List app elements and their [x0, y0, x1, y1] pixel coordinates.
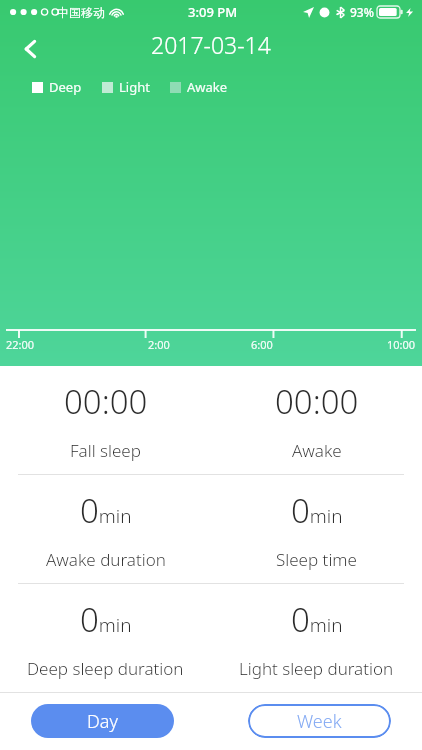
staticText: 10:00: [387, 337, 416, 352]
staticText: 0min: [80, 488, 132, 533]
button[interactable]: Day: [31, 704, 174, 738]
staticText: Fall sleep: [70, 439, 141, 462]
staticText: 22:00: [6, 337, 35, 352]
button[interactable]: Back: [10, 28, 52, 70]
button[interactable]: 0min: [211, 475, 422, 583]
staticText: Light sleep duration: [239, 657, 394, 680]
staticText: 2:00: [148, 337, 170, 352]
staticText: 00:00: [64, 379, 148, 424]
staticText: Week: [297, 709, 342, 734]
staticText: 6:00: [251, 337, 273, 352]
button[interactable]: 0min: [211, 584, 422, 692]
staticText: Light: [119, 78, 150, 96]
button[interactable]: 00:00: [211, 366, 422, 474]
staticText: 0min: [291, 488, 343, 533]
staticText: Deep sleep duration: [27, 657, 184, 680]
staticText: 0min: [80, 597, 132, 642]
button[interactable]: 0min: [0, 584, 211, 692]
staticText: 3:09 PM: [188, 3, 238, 21]
button[interactable]: 00:00: [0, 366, 211, 474]
button[interactable]: Week: [248, 704, 391, 738]
staticText: 93%: [350, 4, 374, 20]
staticText: 00:00: [275, 379, 359, 424]
staticText: Awake duration: [46, 548, 166, 571]
staticText: Awake: [292, 439, 342, 462]
button[interactable]: 0min: [0, 475, 211, 583]
staticText: 2017-03-14: [151, 29, 271, 60]
staticText: Deep: [49, 78, 82, 96]
staticText: 中国移动: [57, 5, 105, 20]
staticText: Day: [87, 709, 118, 734]
staticText: 0min: [291, 597, 343, 642]
staticText: Awake: [187, 78, 228, 96]
staticText: Sleep time: [276, 548, 357, 571]
